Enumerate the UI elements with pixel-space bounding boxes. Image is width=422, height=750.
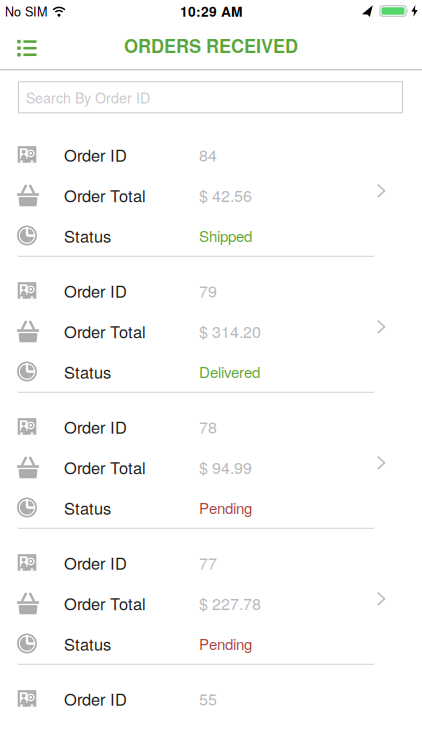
button[interactable]: Order ID <box>0 406 422 447</box>
staticText: Pending <box>199 497 252 518</box>
staticText: Shipped <box>199 225 252 246</box>
button[interactable]: Status <box>0 351 422 392</box>
staticText: Order ID <box>64 687 127 710</box>
staticText: Order ID <box>64 415 127 438</box>
staticText: $ 227.78 <box>199 592 261 614</box>
button[interactable]: Order ID <box>0 270 422 311</box>
staticText: Status <box>64 496 111 519</box>
staticText: Order Total <box>64 319 146 343</box>
button[interactable]: Order Total <box>0 583 422 623</box>
staticText: 77 <box>199 551 217 574</box>
button[interactable]: Search By Order ID <box>18 81 403 113</box>
staticText: Order ID <box>64 143 127 166</box>
staticText: Order ID <box>64 551 127 574</box>
staticText: Order ID <box>64 279 127 302</box>
staticText: 10:29 AM <box>180 1 242 21</box>
button[interactable]: Order ID <box>0 542 422 583</box>
staticText: $ 94.99 <box>199 456 252 478</box>
staticText: Delivered <box>199 361 260 382</box>
staticText: Order Total <box>64 591 146 615</box>
staticText: Search By Order ID <box>26 87 150 107</box>
button[interactable]: Status <box>0 623 422 664</box>
staticText: 84 <box>199 143 217 166</box>
button[interactable]: Status <box>0 215 422 256</box>
staticText: No SIM <box>5 2 47 20</box>
staticText: Order Total <box>64 183 146 207</box>
staticText: $ 42.56 <box>199 184 252 206</box>
staticText: $ 314.20 <box>199 320 261 342</box>
staticText: Status <box>64 360 111 383</box>
staticText: Order Total <box>64 455 146 479</box>
staticText: 79 <box>199 279 217 302</box>
button[interactable]: Order ID <box>0 134 422 175</box>
staticText: Status <box>64 224 111 247</box>
staticText: ORDERS RECEIVED <box>124 33 298 59</box>
button[interactable]: Menu <box>0 24 48 67</box>
button[interactable]: Order Total <box>0 311 422 351</box>
staticText: Status <box>64 632 111 655</box>
staticText: 78 <box>199 415 217 438</box>
staticText: 55 <box>199 687 217 710</box>
button[interactable]: Order ID <box>0 678 422 719</box>
button[interactable]: Status <box>0 487 422 528</box>
staticText: Pending <box>199 633 252 654</box>
button[interactable]: Order Total <box>0 447 422 487</box>
button[interactable]: Order Total <box>0 175 422 215</box>
